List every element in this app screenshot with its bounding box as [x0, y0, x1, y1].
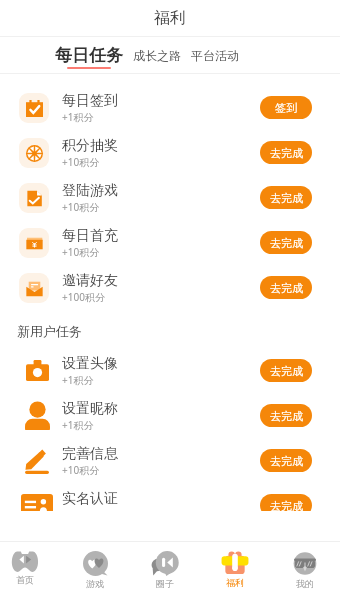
- button[interactable]: 福利: [200, 551, 270, 588]
- button[interactable]: 签到: [260, 96, 312, 119]
- staticText: +1积分: [62, 373, 94, 387]
- button[interactable]: 去完成: [260, 449, 312, 472]
- button[interactable]: 圈子: [130, 551, 200, 589]
- staticText: 每日首充: [62, 227, 118, 245]
- staticText: +1积分: [62, 418, 94, 432]
- staticText: 设置头像: [62, 355, 118, 373]
- staticText: 首页: [16, 574, 34, 585]
- staticText: 新用户任务: [17, 323, 82, 339]
- button[interactable]: 每日签到: [0, 85, 340, 130]
- button[interactable]: 设置昵称: [0, 393, 340, 438]
- staticText: 每日任务: [55, 45, 123, 66]
- button[interactable]: 邀请好友: [0, 265, 340, 310]
- staticText: 完善信息: [62, 445, 118, 463]
- button[interactable]: 完善信息: [0, 438, 340, 483]
- staticText: +1积分: [62, 110, 94, 124]
- staticText: 去完成: [270, 191, 303, 205]
- button[interactable]: 每日任务: [55, 37, 123, 69]
- staticText: 去完成: [270, 281, 303, 295]
- button[interactable]: 去完成: [260, 231, 312, 254]
- staticText: 我的: [296, 578, 314, 589]
- staticText: 去完成: [270, 364, 303, 378]
- staticText: 福利: [226, 577, 244, 588]
- button[interactable]: 设置头像: [0, 348, 340, 393]
- staticText: 签到: [275, 101, 297, 115]
- button[interactable]: 我的: [270, 551, 340, 589]
- button[interactable]: 成长之路: [133, 37, 181, 63]
- staticText: +10积分: [62, 155, 100, 169]
- staticText: +10积分: [62, 463, 100, 477]
- staticText: 积分抽奖: [62, 137, 118, 155]
- staticText: 福利: [154, 8, 186, 28]
- staticText: 登陆游戏: [62, 182, 118, 200]
- staticText: 去完成: [270, 499, 303, 511]
- button[interactable]: 登陆游戏: [0, 175, 340, 220]
- button[interactable]: 每日首充: [0, 220, 340, 265]
- button[interactable]: 去完成: [260, 186, 312, 209]
- staticText: 去完成: [270, 236, 303, 250]
- staticText: +10积分: [62, 245, 100, 259]
- staticText: +10积分: [62, 200, 100, 214]
- button[interactable]: 去完成: [260, 359, 312, 382]
- staticText: 去完成: [270, 146, 303, 160]
- button[interactable]: 去完成: [260, 404, 312, 427]
- button[interactable]: 首页: [0, 551, 60, 585]
- button[interactable]: 平台活动: [191, 37, 239, 63]
- button[interactable]: 实名认证: [0, 483, 340, 511]
- staticText: 平台活动: [191, 48, 239, 63]
- staticText: 游戏: [86, 578, 104, 589]
- staticText: +100积分: [62, 290, 105, 304]
- button[interactable]: 积分抽奖: [0, 130, 340, 175]
- staticText: 设置昵称: [62, 400, 118, 418]
- button[interactable]: 去完成: [260, 494, 312, 511]
- button[interactable]: 去完成: [260, 141, 312, 164]
- staticText: 实名认证: [62, 490, 118, 508]
- staticText: 成长之路: [133, 48, 181, 63]
- button[interactable]: 去完成: [260, 276, 312, 299]
- staticText: 邀请好友: [62, 272, 118, 290]
- staticText: 圈子: [156, 578, 174, 589]
- staticText: 去完成: [270, 454, 303, 468]
- button[interactable]: 游戏: [60, 551, 130, 589]
- staticText: 去完成: [270, 409, 303, 423]
- staticText: 每日签到: [62, 92, 118, 110]
